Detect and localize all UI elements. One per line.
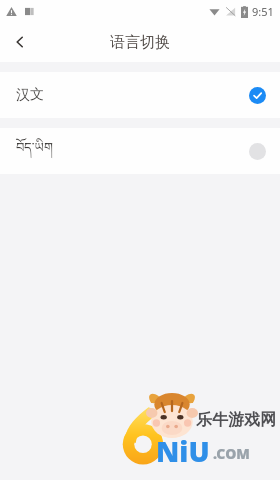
staticText: 语言切换 bbox=[110, 33, 170, 52]
staticText: 汉文 bbox=[16, 86, 44, 104]
staticText: 乐牛游戏网 bbox=[196, 410, 276, 430]
staticText: NiU bbox=[156, 432, 210, 466]
button[interactable]: བོད་ཡིག bbox=[0, 128, 280, 174]
button[interactable]: Back bbox=[0, 22, 40, 62]
staticText: .COM bbox=[213, 444, 250, 463]
button[interactable]: 汉文 bbox=[0, 72, 280, 118]
staticText: བོད་ཡིག bbox=[16, 133, 54, 170]
staticText: 9:51 bbox=[252, 4, 274, 19]
